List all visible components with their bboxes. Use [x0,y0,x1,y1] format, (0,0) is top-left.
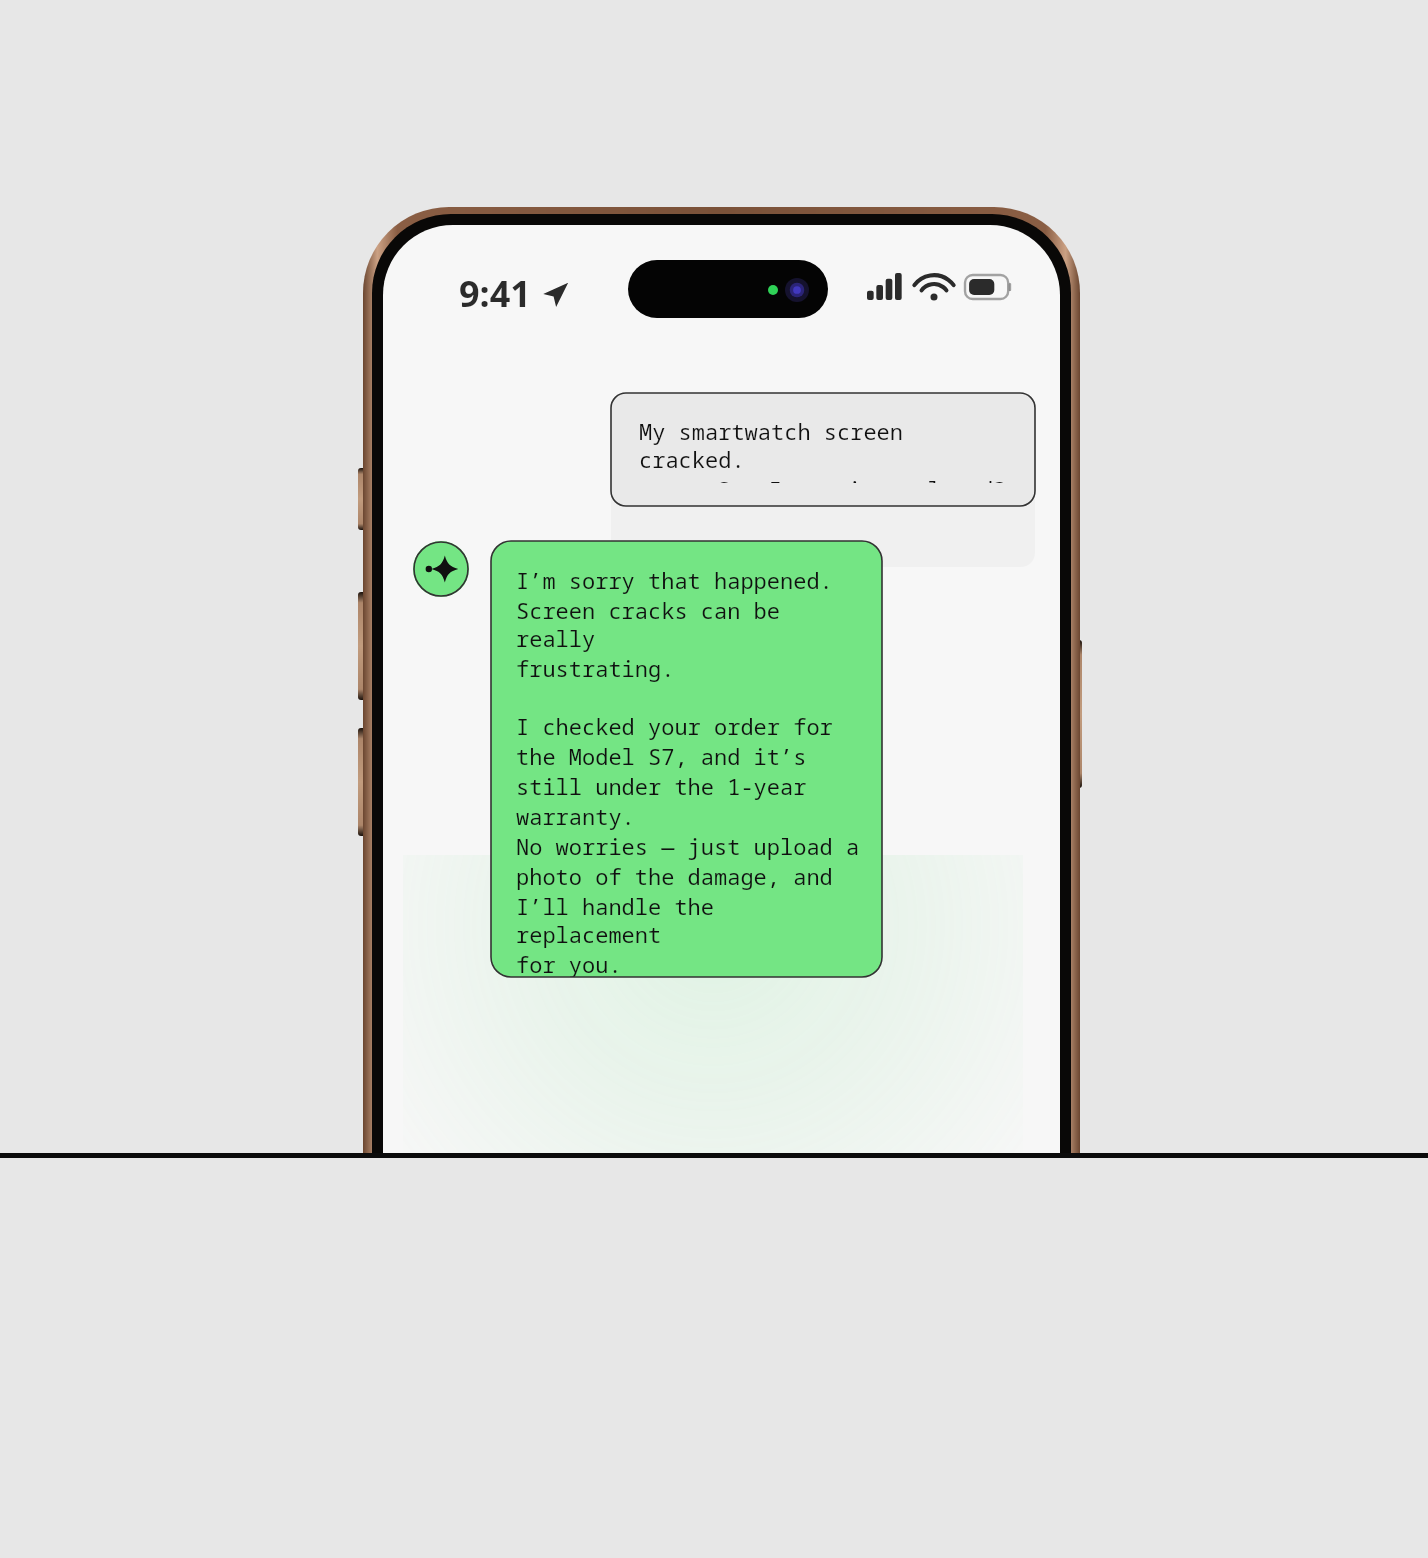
staticText: Screen cracks can be really [516,595,870,653]
staticText: I checked your order for [516,711,833,741]
staticText: 9:41 [459,269,531,318]
staticText: I’m sorry that happened. [516,565,833,595]
staticText: for you. [516,949,622,977]
staticText: warranty. [516,801,635,831]
staticText: photo of the damage, and [516,861,833,891]
staticText: still under the 1-year [516,771,807,801]
button[interactable]: AI assistant [413,541,469,597]
staticText: I’ll handle the replacement [516,891,870,949]
staticText: My smartwatch screen cracked. [639,416,1007,474]
staticText: Can I get it replaced? [716,474,1007,483]
staticText: frustrating. [516,653,675,683]
button[interactable]: My smartwatch screen cracked. [611,393,1035,506]
button[interactable]: I’m sorry that happened. [491,541,882,977]
staticText: No worries — just upload a [516,831,860,861]
staticText: the Model S7, and it’s [516,741,807,771]
